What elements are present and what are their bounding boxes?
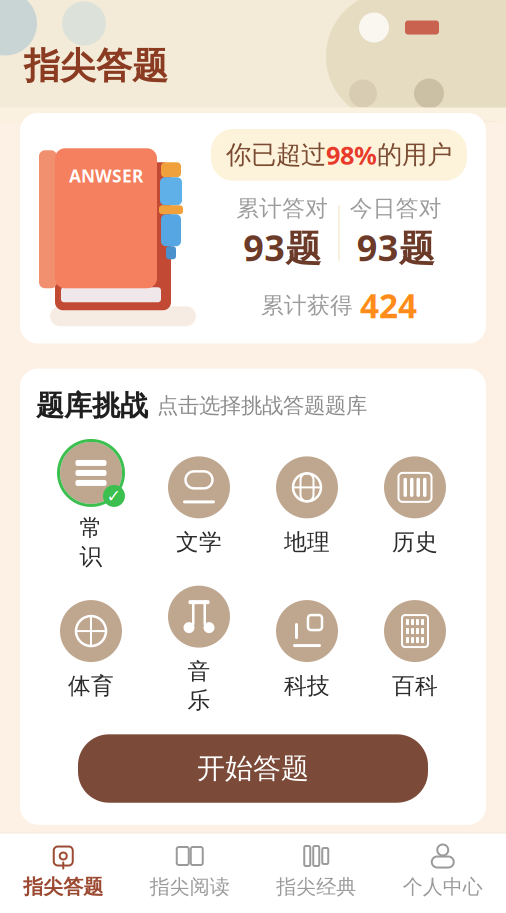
staticText: 百科	[392, 672, 438, 700]
staticText: ANWSER	[69, 164, 143, 187]
staticText: 指尖答题	[24, 44, 168, 88]
staticText: 指尖答题	[23, 874, 103, 899]
staticText: 常	[79, 514, 102, 542]
staticText: 个人中心	[403, 874, 483, 899]
staticText: 你已超过	[226, 139, 326, 170]
button[interactable]: 百科	[361, 597, 469, 700]
staticText: 今日答对	[350, 195, 442, 222]
staticText: 点击选择挑战答题题库	[157, 393, 367, 419]
staticText: 地理	[284, 528, 330, 556]
button[interactable]: 历史	[361, 453, 469, 556]
button[interactable]: 体育	[37, 597, 145, 700]
staticText: 题库挑战	[36, 389, 148, 423]
button[interactable]: 文学	[145, 453, 253, 556]
staticText: 424	[360, 283, 417, 328]
button[interactable]: 开始答题	[78, 734, 428, 803]
button[interactable]: 科技	[253, 597, 361, 700]
button[interactable]: 指尖经典	[253, 833, 379, 912]
staticText: 文学	[176, 528, 222, 556]
staticText: 开始答题	[197, 751, 309, 786]
button[interactable]: 个人中心	[379, 833, 506, 912]
staticText: 指尖阅读	[150, 874, 230, 899]
staticText: 指尖经典	[276, 874, 356, 899]
staticText: 98%	[326, 138, 377, 172]
staticText: 体育	[68, 672, 114, 700]
staticText: ✓	[106, 486, 121, 506]
staticText: 乐	[187, 686, 210, 714]
staticText: 的用户	[377, 139, 452, 170]
staticText: 93题	[357, 223, 435, 271]
staticText: 93题	[243, 223, 321, 271]
staticText: 音	[187, 658, 210, 685]
staticText: 识	[79, 543, 102, 571]
button[interactable]: 地理	[253, 453, 361, 556]
staticText: 累计获得	[261, 291, 353, 319]
button[interactable]: 指尖阅读	[126, 833, 253, 912]
staticText: 科技	[284, 672, 330, 700]
button[interactable]: ✓	[37, 439, 145, 571]
staticText: 历史	[392, 528, 438, 556]
staticText: 累计答对	[236, 195, 328, 222]
button[interactable]: 指尖答题	[0, 833, 126, 912]
button[interactable]: 音	[145, 583, 253, 714]
